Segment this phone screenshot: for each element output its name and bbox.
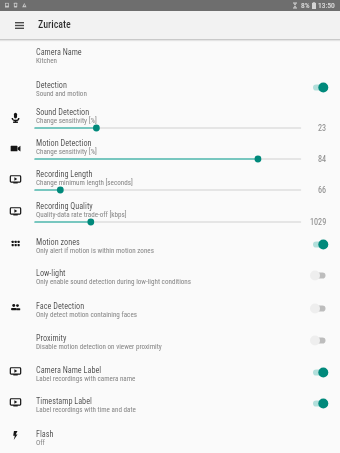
staticText: Low-light <box>36 268 66 278</box>
staticText: Camera Name <box>36 47 82 57</box>
staticText: 1029 <box>310 217 327 227</box>
button[interactable]: Toggle setting <box>310 234 332 255</box>
button[interactable]: Motion zones <box>0 229 340 257</box>
button[interactable]: Toggle setting <box>310 298 332 319</box>
staticText: Motion Detection <box>36 138 92 148</box>
staticText: Only detect motion containing faces <box>36 310 137 318</box>
staticText: Change sensitivity [%] <box>36 147 97 155</box>
button[interactable]: Motion Detection <box>0 130 340 161</box>
staticText: Only alert if motion is within motion zo… <box>36 246 154 254</box>
button[interactable]: Timestamp Label <box>0 388 340 416</box>
staticText: Change minimum length [seconds] <box>36 178 133 186</box>
staticText: Sound Detection <box>36 107 90 117</box>
button[interactable]: Toggle setting <box>310 330 332 351</box>
button[interactable]: Toggle setting <box>310 393 332 414</box>
staticText: Sound and motion <box>36 89 87 97</box>
staticText: 66 <box>318 185 327 195</box>
staticText: 23 <box>318 123 327 133</box>
button[interactable]: Recording Length <box>0 161 340 192</box>
button[interactable]: Open navigation menu <box>10 13 29 37</box>
staticText: Detection <box>36 80 67 90</box>
staticText: Face Detection <box>36 301 85 311</box>
button[interactable]: Camera Name <box>0 39 340 67</box>
staticText: Zuricate <box>38 19 71 31</box>
staticText: Quality-data rate trade-off [kbps] <box>36 210 127 218</box>
staticText: Only enable sound detection during low-l… <box>36 277 191 285</box>
staticText: Recording Length <box>36 169 93 179</box>
staticText: Timestamp Label <box>36 396 92 406</box>
staticText: Proximity <box>36 333 67 343</box>
staticText: Flash <box>36 429 54 439</box>
button[interactable]: Toggle setting <box>310 77 332 98</box>
button[interactable]: Proximity <box>0 325 340 353</box>
button[interactable]: Sound Detection <box>0 99 340 130</box>
staticText: Label recordings with time and date <box>36 405 136 413</box>
staticText: Kitchen <box>36 56 58 64</box>
button[interactable]: Face Detection <box>0 293 340 321</box>
button[interactable]: Flash <box>0 421 340 449</box>
button[interactable]: Toggle setting <box>310 265 332 286</box>
staticText: 84 <box>318 154 327 164</box>
button[interactable]: Toggle setting <box>310 362 332 383</box>
staticText: Motion zones <box>36 237 80 247</box>
staticText: 8% <box>301 1 310 10</box>
button[interactable]: Recording Quality <box>0 193 340 224</box>
staticText: Disable motion detection on viewer proxi… <box>36 342 162 350</box>
button[interactable]: Camera Name Label <box>0 357 340 385</box>
button[interactable]: Detection <box>0 72 340 100</box>
staticText: Recording Quality <box>36 201 93 211</box>
button[interactable]: Low-light <box>0 260 340 288</box>
staticText: Label recordings with camera name <box>36 374 136 382</box>
staticText: Change sensitivity [%] <box>36 116 97 124</box>
staticText: Off <box>36 438 45 446</box>
staticText: 13:50 <box>318 1 335 10</box>
staticText: Camera Name Label <box>36 365 102 375</box>
